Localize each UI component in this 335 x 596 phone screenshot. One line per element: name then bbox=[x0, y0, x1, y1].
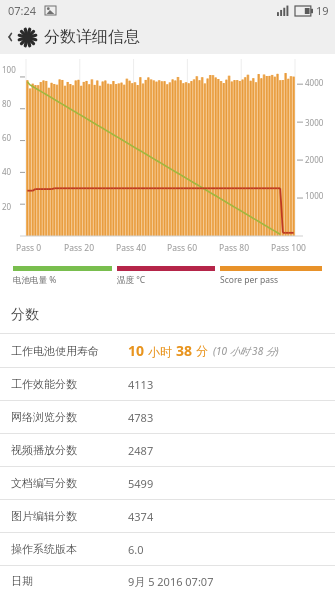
button[interactable]: 工作电池使用寿命 bbox=[0, 334, 335, 367]
staticText: 网络浏览分数 bbox=[11, 410, 128, 424]
staticText: 温度 °C bbox=[117, 274, 146, 286]
staticText: 电池电量 % bbox=[13, 274, 57, 286]
staticText: 2487 bbox=[128, 443, 154, 458]
staticText: 工作电池使用寿命 bbox=[11, 344, 128, 358]
staticText: 分数详细信息 bbox=[44, 27, 140, 47]
staticText: 4783 bbox=[128, 410, 154, 425]
staticText: 5499 bbox=[128, 476, 154, 491]
staticText: 1000 bbox=[305, 190, 324, 201]
staticText: 6.0 bbox=[128, 542, 144, 557]
button[interactable]: 工作效能分数 bbox=[0, 368, 335, 400]
staticText: 20 bbox=[2, 201, 12, 212]
button[interactable]: 视频播放分数 bbox=[0, 434, 335, 466]
staticText: 2000 bbox=[305, 154, 324, 165]
staticText: 60 bbox=[2, 132, 12, 143]
staticText: 07:24 bbox=[8, 3, 37, 18]
staticText: 9月 5 2016 07:07 bbox=[128, 574, 214, 589]
staticText: 分数 bbox=[11, 306, 39, 324]
staticText: 4374 bbox=[128, 509, 154, 524]
staticText: Score per pass bbox=[220, 274, 279, 286]
staticText: 38 bbox=[176, 341, 196, 360]
staticText: Pass 0 bbox=[16, 242, 42, 254]
staticText: Pass 100 bbox=[271, 242, 306, 254]
staticText: Pass 60 bbox=[167, 242, 197, 254]
staticText: 4000 bbox=[305, 77, 324, 88]
staticText: (10 小时 38 分) bbox=[213, 344, 279, 358]
staticText: 视频播放分数 bbox=[11, 443, 128, 457]
staticText: 10 bbox=[128, 341, 148, 360]
button[interactable]: 文档编写分数 bbox=[0, 467, 335, 499]
staticText: Pass 40 bbox=[116, 242, 146, 254]
staticText: 小时 bbox=[148, 343, 176, 359]
staticText: 日期 bbox=[11, 574, 128, 588]
staticText: 40 bbox=[2, 166, 12, 177]
button[interactable]: 网络浏览分数 bbox=[0, 401, 335, 433]
staticText: 工作效能分数 bbox=[11, 377, 128, 391]
staticText: 分 bbox=[196, 343, 208, 358]
staticText: 100 bbox=[2, 64, 16, 75]
staticText: 19 bbox=[316, 3, 329, 18]
button[interactable]: Back bbox=[0, 20, 335, 54]
staticText: Pass 80 bbox=[219, 242, 249, 254]
staticText: 80 bbox=[2, 98, 12, 109]
staticText: 操作系统版本 bbox=[11, 542, 128, 556]
button[interactable]: 图片编辑分数 bbox=[0, 500, 335, 532]
button[interactable]: 日期 bbox=[0, 566, 335, 596]
other: Back bbox=[4, 31, 16, 43]
staticText: 图片编辑分数 bbox=[11, 509, 128, 523]
staticText: 3000 bbox=[305, 117, 324, 128]
staticText: 文档编写分数 bbox=[11, 476, 128, 490]
staticText: 4113 bbox=[128, 377, 154, 392]
button[interactable]: 操作系统版本 bbox=[0, 533, 335, 565]
staticText: Pass 20 bbox=[64, 242, 94, 254]
